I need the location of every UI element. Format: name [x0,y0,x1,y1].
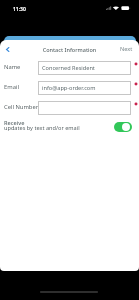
button[interactable]: Concerned Resident [38,61,131,75]
button[interactable]: Receive updates toggle [114,122,132,132]
staticText: Name [4,63,21,71]
staticText: info@app-order.com [42,84,96,92]
staticText: Contact Information [0,46,139,53]
button[interactable]: info@app-order.com [38,81,131,95]
staticText: Next [120,45,133,53]
staticText: Concerned Resident [42,64,95,72]
staticText: Receive [4,119,25,127]
staticText: Cell Number [4,103,39,111]
staticText: 11:30 [13,6,26,13]
button[interactable] [38,101,131,115]
staticText: Email [4,83,19,91]
button[interactable]: Next [115,42,138,56]
button[interactable]: Back [0,42,14,56]
staticText: updates by text and/or email [4,124,80,132]
